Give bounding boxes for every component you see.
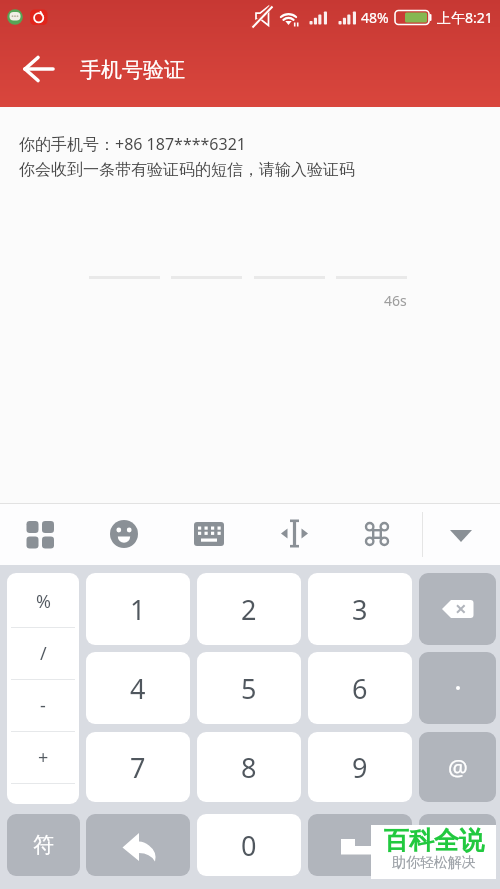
staticText: 9 bbox=[352, 749, 368, 786]
button[interactable] bbox=[15, 45, 63, 93]
staticText: 百科全说 bbox=[384, 825, 484, 856]
button[interactable]: 6 bbox=[308, 652, 412, 724]
button[interactable] bbox=[268, 508, 320, 560]
button[interactable]: - bbox=[7, 679, 79, 731]
button[interactable] bbox=[419, 652, 496, 724]
staticText: 1 bbox=[130, 591, 146, 628]
button[interactable]: @ bbox=[419, 732, 496, 802]
staticText: 8 bbox=[241, 749, 257, 786]
staticText: 4 bbox=[130, 670, 146, 707]
staticText: - bbox=[40, 693, 46, 718]
staticText: @ bbox=[448, 752, 468, 782]
button[interactable] bbox=[183, 508, 235, 560]
staticText: 符 bbox=[33, 832, 54, 858]
button[interactable]: 9 bbox=[308, 732, 412, 802]
staticText: 3 bbox=[352, 591, 368, 628]
staticText: + bbox=[38, 745, 49, 770]
staticText: 助你轻松解决 bbox=[392, 854, 476, 872]
button[interactable]: + bbox=[7, 731, 79, 783]
staticText: 上午8:21 bbox=[437, 8, 493, 27]
button[interactable]: 5 bbox=[197, 652, 301, 724]
button[interactable]: 7 bbox=[86, 732, 190, 802]
button[interactable]: 1 bbox=[86, 573, 190, 645]
staticText: 6 bbox=[352, 670, 368, 707]
button[interactable]: 4 bbox=[86, 652, 190, 724]
staticText: 46s bbox=[384, 291, 407, 310]
staticText: 手机号验证 bbox=[80, 57, 185, 83]
staticText: 7 bbox=[130, 749, 146, 786]
staticText: % bbox=[36, 589, 51, 614]
staticText: 你的手机号：+86 187****6321 bbox=[19, 133, 246, 155]
button[interactable] bbox=[351, 508, 403, 560]
staticText: 5 bbox=[241, 670, 257, 707]
button[interactable] bbox=[86, 814, 190, 876]
staticText: / bbox=[40, 641, 47, 666]
button[interactable] bbox=[419, 814, 496, 876]
staticText: 48% bbox=[361, 8, 389, 27]
button[interactable]: 2 bbox=[197, 573, 301, 645]
button[interactable]: 8 bbox=[197, 732, 301, 802]
button[interactable]: 0 bbox=[197, 814, 301, 876]
button[interactable] bbox=[419, 573, 496, 645]
button[interactable]: / bbox=[7, 627, 79, 679]
button[interactable] bbox=[14, 508, 66, 560]
button[interactable] bbox=[308, 814, 412, 876]
staticText: 你会收到一条带有验证码的短信，请输入验证码 bbox=[19, 160, 355, 180]
button[interactable]: 百科全说 bbox=[371, 825, 496, 879]
staticText: 2 bbox=[241, 591, 257, 628]
staticText: 0 bbox=[241, 827, 257, 864]
button[interactable]: 符 bbox=[7, 814, 80, 876]
button[interactable] bbox=[98, 508, 150, 560]
button[interactable]: 3 bbox=[308, 573, 412, 645]
button[interactable]: % bbox=[7, 575, 79, 627]
button[interactable] bbox=[435, 508, 487, 560]
